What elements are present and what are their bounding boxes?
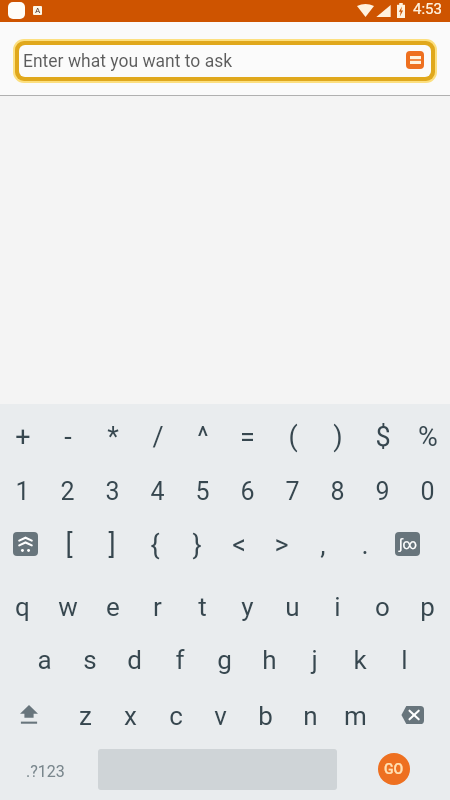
button[interactable]: t bbox=[180, 572, 225, 629]
staticText: u bbox=[285, 592, 300, 622]
button[interactable]: m bbox=[333, 686, 378, 743]
button[interactable]: - bbox=[45, 404, 90, 460]
staticText: 4 bbox=[150, 477, 165, 506]
staticText: + bbox=[15, 421, 31, 453]
button[interactable]: x bbox=[108, 686, 153, 743]
button[interactable]: ) bbox=[315, 404, 360, 460]
button[interactable]: More symbols bbox=[4, 516, 47, 572]
button[interactable]: % bbox=[405, 404, 450, 460]
button[interactable]: h bbox=[247, 629, 292, 686]
button[interactable]: w bbox=[45, 572, 90, 629]
button[interactable]: Math symbols bbox=[386, 516, 428, 572]
staticText: $ bbox=[375, 421, 391, 453]
button[interactable]: e bbox=[90, 572, 135, 629]
button[interactable]: o bbox=[360, 572, 405, 629]
staticText: g bbox=[217, 645, 232, 675]
staticText: = bbox=[240, 421, 255, 453]
staticText: e bbox=[106, 592, 120, 622]
button[interactable]: f bbox=[157, 629, 202, 686]
staticText: w bbox=[58, 592, 78, 622]
button[interactable]: s bbox=[67, 629, 112, 686]
button[interactable]: Menu bbox=[406, 51, 424, 69]
button[interactable]: 0 bbox=[405, 460, 450, 516]
button[interactable]: 8 bbox=[315, 460, 360, 516]
button[interactable]: } bbox=[176, 516, 218, 572]
staticText: { bbox=[150, 529, 160, 561]
button[interactable]: z bbox=[63, 686, 108, 743]
button[interactable]: u bbox=[270, 572, 315, 629]
staticText: 6 bbox=[240, 477, 255, 506]
staticText: ] bbox=[108, 529, 116, 561]
staticText: f bbox=[175, 645, 185, 675]
button[interactable]: 9 bbox=[360, 460, 405, 516]
button[interactable]: i bbox=[315, 572, 360, 629]
button[interactable]: 5 bbox=[180, 460, 225, 516]
staticText: o bbox=[375, 592, 390, 622]
staticText: v bbox=[214, 701, 227, 731]
button[interactable]: k bbox=[337, 629, 382, 686]
button[interactable]: ^ bbox=[180, 404, 225, 460]
button[interactable]: r bbox=[135, 572, 180, 629]
button[interactable]: [ bbox=[47, 516, 90, 572]
button[interactable]: , bbox=[302, 516, 344, 572]
staticText: GO bbox=[384, 761, 404, 777]
staticText: c bbox=[169, 701, 183, 731]
button[interactable]: v bbox=[198, 686, 243, 743]
button[interactable]: d bbox=[112, 629, 157, 686]
button[interactable]: g bbox=[202, 629, 247, 686]
staticText: ∫∞ bbox=[399, 536, 417, 552]
staticText: , bbox=[320, 529, 326, 561]
staticText: / bbox=[152, 421, 164, 453]
staticText: 0 bbox=[420, 477, 435, 506]
button[interactable]: 1 bbox=[0, 460, 45, 516]
staticText: d bbox=[127, 645, 142, 675]
staticText: .?123 bbox=[26, 762, 65, 781]
staticText: k bbox=[353, 645, 367, 675]
button[interactable]: / bbox=[135, 404, 180, 460]
button[interactable]: j bbox=[292, 629, 337, 686]
button[interactable]: $ bbox=[360, 404, 405, 460]
staticText: 4:53 bbox=[413, 0, 442, 18]
staticText: } bbox=[192, 529, 202, 561]
staticText: ) bbox=[333, 421, 343, 453]
button[interactable]: y bbox=[225, 572, 270, 629]
button[interactable]: c bbox=[153, 686, 198, 743]
button[interactable]: 7 bbox=[270, 460, 315, 516]
button[interactable]: q bbox=[0, 572, 45, 629]
button[interactable]: Shift bbox=[0, 686, 57, 743]
button[interactable]: . bbox=[344, 516, 386, 572]
button[interactable]: p bbox=[405, 572, 450, 629]
button[interactable]: ] bbox=[90, 516, 133, 572]
staticText: x bbox=[124, 701, 137, 731]
button[interactable]: n bbox=[288, 686, 333, 743]
button[interactable]: { bbox=[133, 516, 176, 572]
button[interactable]: .?123 bbox=[0, 743, 90, 800]
staticText: . bbox=[361, 529, 369, 561]
button[interactable]: Backspace bbox=[378, 686, 447, 743]
staticText: z bbox=[79, 701, 92, 731]
button[interactable]: Enter what you want to ask bbox=[15, 41, 435, 81]
button[interactable]: GO bbox=[378, 753, 410, 785]
button[interactable]: 4 bbox=[135, 460, 180, 516]
button[interactable]: > bbox=[260, 516, 302, 572]
staticText: a bbox=[37, 645, 52, 675]
button[interactable]: ( bbox=[270, 404, 315, 460]
button[interactable]: a bbox=[22, 629, 67, 686]
staticText: t bbox=[198, 592, 207, 622]
staticText: 1 bbox=[15, 477, 30, 506]
staticText: ^ bbox=[197, 421, 209, 453]
staticText: % bbox=[418, 421, 438, 453]
button[interactable]: b bbox=[243, 686, 288, 743]
button[interactable]: 3 bbox=[90, 460, 135, 516]
button[interactable]: 6 bbox=[225, 460, 270, 516]
button[interactable]: * bbox=[90, 404, 135, 460]
button[interactable]: = bbox=[225, 404, 270, 460]
button[interactable]: + bbox=[0, 404, 45, 460]
staticText: b bbox=[258, 701, 273, 731]
button[interactable]: 2 bbox=[45, 460, 90, 516]
button[interactable]: < bbox=[218, 516, 260, 572]
staticText: j bbox=[311, 645, 318, 675]
button[interactable]: l bbox=[382, 629, 427, 686]
staticText: s bbox=[83, 645, 97, 675]
